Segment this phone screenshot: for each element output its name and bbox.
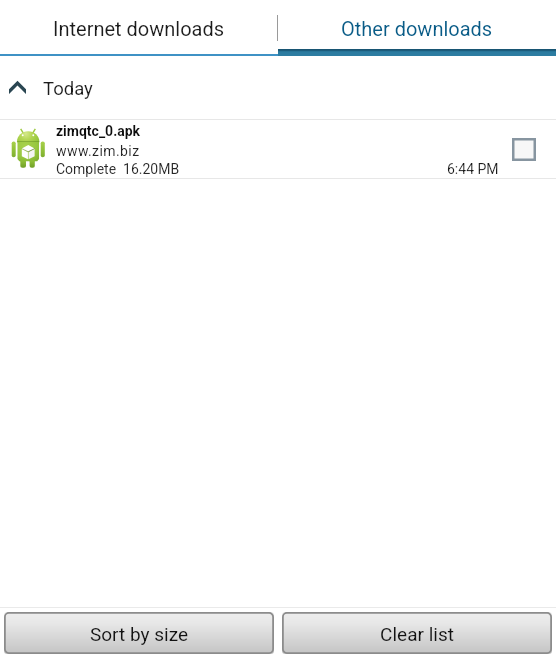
button[interactable]: Select download bbox=[512, 138, 536, 161]
staticText: Clear list bbox=[380, 623, 454, 645]
button[interactable]: Clear list bbox=[282, 612, 552, 654]
button[interactable]: Other downloads bbox=[278, 0, 556, 56]
staticText: zimqtc_0.apk bbox=[56, 123, 141, 139]
button[interactable]: zimqtc_0.apk bbox=[0, 120, 556, 178]
staticText: www.zim.biz bbox=[56, 143, 140, 159]
staticText: Complete 16.20MB bbox=[56, 161, 180, 177]
button[interactable]: Sort by size bbox=[4, 612, 274, 654]
staticText: 6:44 PM bbox=[447, 161, 499, 177]
staticText: Today bbox=[43, 78, 93, 100]
other: Collapse bbox=[9, 79, 26, 94]
staticText: Internet downloads bbox=[53, 17, 225, 40]
staticText: Other downloads bbox=[341, 17, 493, 40]
button[interactable]: Internet downloads bbox=[0, 0, 278, 56]
button[interactable]: Collapse bbox=[0, 57, 556, 119]
staticText: Sort by size bbox=[90, 623, 188, 645]
